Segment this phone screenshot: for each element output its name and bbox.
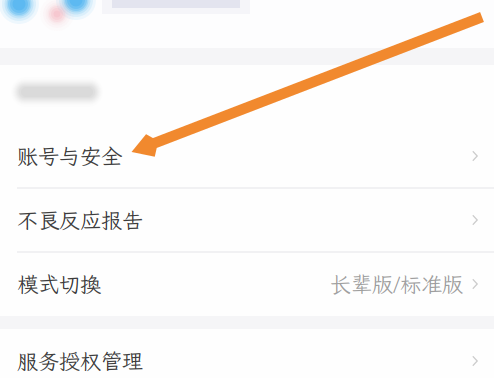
button[interactable]: 服务授权管理 — [0, 329, 494, 378]
button[interactable]: 账号与安全 — [0, 124, 494, 188]
staticText: 不良反应报告 — [17, 206, 143, 234]
button[interactable]: 不良反应报告 — [0, 188, 494, 252]
staticText: 长辈版/标准版 — [330, 270, 463, 298]
staticText: 模式切换 — [17, 270, 101, 298]
staticText: 服务授权管理 — [17, 347, 143, 375]
staticText: 账号与安全 — [17, 142, 122, 170]
button[interactable]: 模式切换 — [0, 252, 494, 316]
